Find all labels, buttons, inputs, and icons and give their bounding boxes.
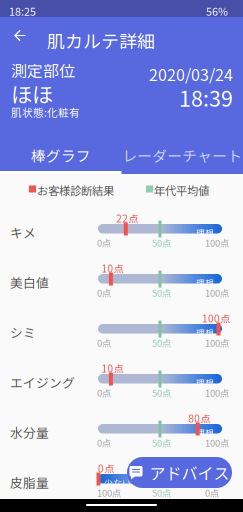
staticText: 2020/03/24 [149, 62, 233, 86]
staticText: 80点 [188, 411, 210, 425]
staticText: 理想 [196, 276, 214, 289]
staticText: 少ない [104, 476, 131, 489]
staticText: シミ [10, 323, 36, 341]
staticText: 0点 [205, 486, 219, 499]
staticText: 10点 [101, 361, 123, 375]
button[interactable]: Back [14, 29, 26, 41]
staticText: 50点 [152, 336, 171, 349]
button[interactable]: アドバイス [127, 457, 232, 488]
staticText: 測定部位 [11, 58, 75, 82]
staticText: 100点 [205, 236, 229, 249]
staticText: 10点 [101, 261, 123, 275]
staticText: 100点 [205, 336, 229, 349]
staticText: 18:25 [9, 3, 36, 19]
staticText: 100点 [202, 311, 230, 325]
staticText: 美白値 [10, 273, 49, 291]
staticText: 水分量 [10, 423, 49, 441]
button[interactable]: 棒グラフ [0, 138, 121, 172]
staticText: 100点 [205, 386, 229, 399]
staticText: 100点 [97, 486, 121, 499]
staticText: 肌状態:化粧有 [11, 104, 80, 120]
staticText: 50点 [152, 286, 171, 299]
staticText: 理想 [196, 226, 214, 239]
staticText: 0点 [97, 386, 111, 399]
staticText: 理想 [196, 326, 214, 339]
staticText: 棒グラフ [31, 144, 91, 166]
staticText: キメ [10, 223, 36, 241]
staticText: 0点 [97, 436, 111, 449]
staticText: 22点 [116, 211, 138, 225]
staticText: 100点 [205, 286, 229, 299]
staticText: エイジング [10, 373, 75, 391]
staticText: 年代平均値 [154, 182, 209, 198]
staticText: 理想 [196, 426, 214, 439]
staticText: 50点 [152, 386, 171, 399]
staticText: 0点 [98, 461, 114, 475]
staticText: 理想 [196, 376, 214, 389]
staticText: 0点 [97, 336, 111, 349]
staticText: レーダーチャート [122, 144, 242, 166]
staticText: 0点 [97, 286, 111, 299]
staticText: 0点 [97, 236, 111, 249]
staticText: アドバイス [149, 461, 229, 484]
staticText: 50点 [152, 486, 171, 499]
staticText: 50点 [152, 236, 171, 249]
staticText: 皮脂量 [10, 473, 49, 491]
staticText: お客様診断結果 [37, 182, 114, 198]
staticText: ほほ [11, 78, 53, 109]
staticText: 56% [206, 3, 228, 19]
staticText: 肌カルテ詳細 [47, 27, 155, 53]
button[interactable]: レーダーチャート [121, 138, 243, 172]
staticText: 18:39 [179, 82, 233, 113]
staticText: 100点 [205, 436, 229, 449]
staticText: 50点 [152, 436, 171, 449]
